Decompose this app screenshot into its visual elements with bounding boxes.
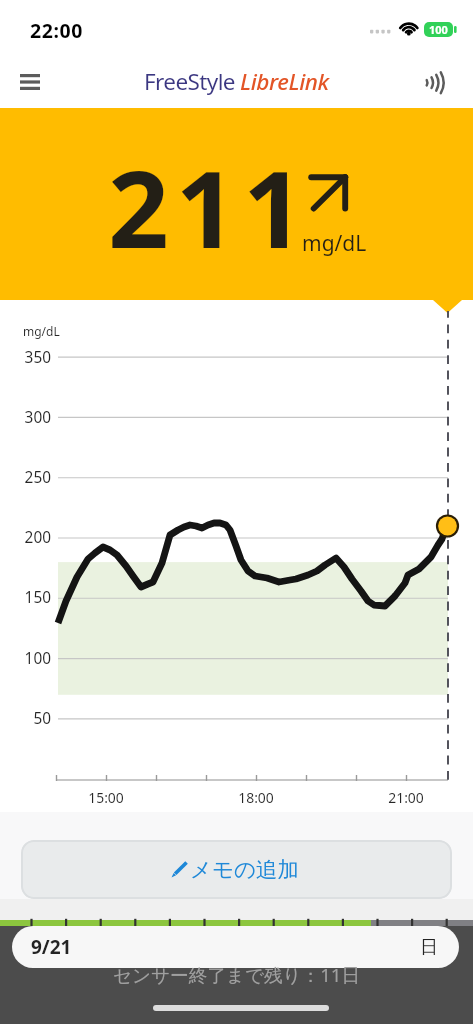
staticText: mg/dL <box>23 323 60 339</box>
staticText: 250 <box>0 467 51 488</box>
staticText: メモの追加 <box>190 856 300 883</box>
staticText: 18:00 <box>216 788 296 807</box>
staticText: mg/dL <box>302 229 367 258</box>
staticText: 15:00 <box>66 788 146 807</box>
staticText: 日 <box>420 936 438 959</box>
staticText: 150 <box>0 587 51 608</box>
button[interactable]: Scan sensor <box>409 56 459 108</box>
staticText: センサー終了まで残り：11日 <box>113 962 361 987</box>
button[interactable]: 9/21 <box>12 926 459 968</box>
staticText: 100 <box>0 648 51 669</box>
staticText: 200 <box>0 527 51 548</box>
staticText: FreeStyle <box>144 66 235 97</box>
staticText: 350 <box>0 347 51 368</box>
staticText: 21:00 <box>366 788 446 807</box>
button[interactable]: Menu <box>4 56 56 108</box>
button[interactable]: メモの追加 <box>21 840 452 899</box>
staticText: 9/21 <box>31 934 72 960</box>
staticText: LibreLink <box>240 66 329 97</box>
staticText: 100 <box>429 22 448 37</box>
staticText: 300 <box>0 407 51 428</box>
staticText: 50 <box>0 708 51 729</box>
staticText: 211 <box>108 134 311 279</box>
staticText: 22:00 <box>30 17 84 44</box>
